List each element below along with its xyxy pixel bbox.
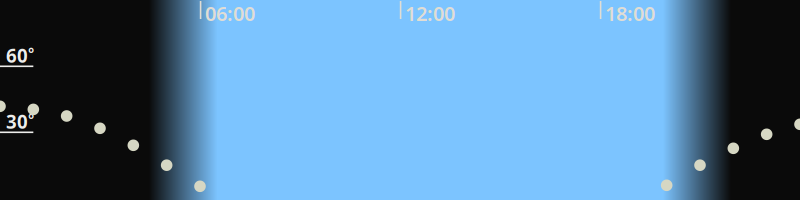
staticText: 60 bbox=[6, 43, 28, 68]
staticText: 06:00 bbox=[205, 0, 255, 27]
staticText: 18:00 bbox=[605, 0, 655, 27]
staticText: 30 bbox=[6, 109, 28, 134]
staticText: ° bbox=[28, 43, 34, 63]
staticText: 12:00 bbox=[405, 0, 455, 27]
staticText: ° bbox=[28, 109, 34, 129]
